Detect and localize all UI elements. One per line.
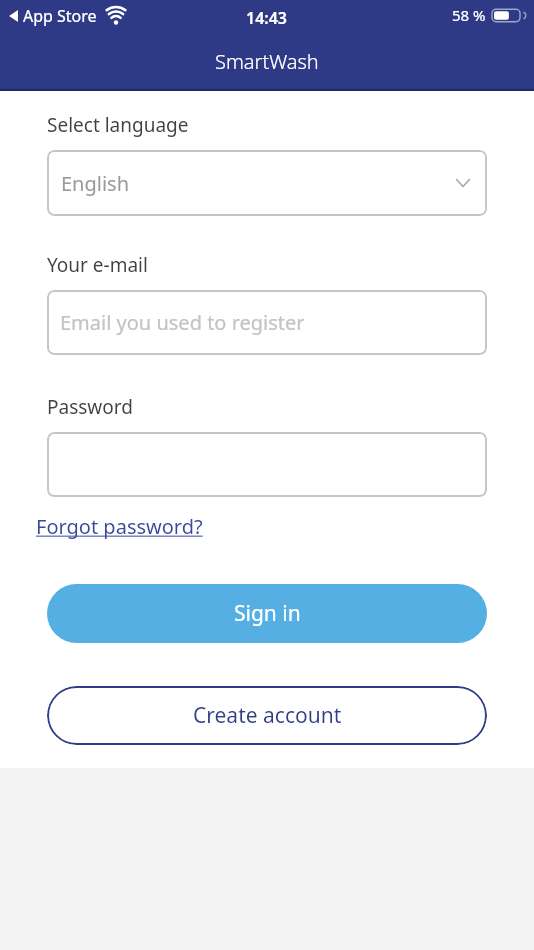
button[interactable]: English xyxy=(47,150,487,216)
staticText: Sign in xyxy=(234,599,301,628)
button[interactable]: Forgot password? xyxy=(36,513,203,540)
staticText: 58 % xyxy=(452,5,486,25)
staticText: 14:43 xyxy=(246,7,288,29)
staticText: Your e-mail xyxy=(47,252,148,278)
staticText: App Store xyxy=(23,5,97,27)
staticText: Email you used to register xyxy=(60,309,305,336)
staticText: English xyxy=(61,170,130,197)
staticText: Create account xyxy=(193,701,342,730)
button[interactable]: Email you used to register xyxy=(47,290,487,355)
staticText: Forgot password? xyxy=(36,513,203,540)
staticText: Password xyxy=(47,394,133,420)
staticText: SmartWash xyxy=(215,48,319,75)
button[interactable] xyxy=(47,432,487,497)
button[interactable]: Sign in xyxy=(47,584,487,643)
staticText: Select language xyxy=(47,112,189,138)
button[interactable]: Create account xyxy=(47,686,487,745)
